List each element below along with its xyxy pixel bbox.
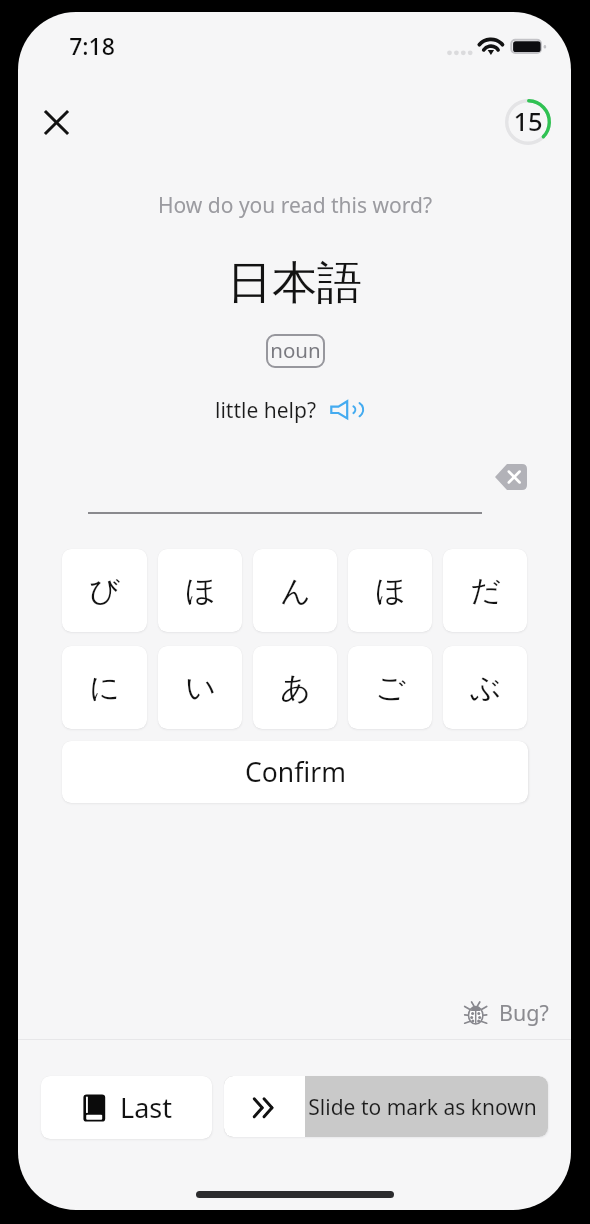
button[interactable]: ぶ xyxy=(443,646,527,729)
button[interactable]: little help? xyxy=(215,390,363,430)
button[interactable]: あ xyxy=(253,646,337,729)
staticText: だ xyxy=(470,572,501,610)
button[interactable]: Confirm xyxy=(62,741,528,803)
staticText: 7:18 xyxy=(69,30,115,61)
button[interactable]: Bug? xyxy=(464,992,549,1036)
staticText: ご xyxy=(375,669,406,707)
button[interactable]: い xyxy=(158,646,242,729)
staticText: ん xyxy=(280,572,311,610)
button[interactable]: ほ xyxy=(158,549,242,632)
button[interactable]: Last xyxy=(41,1076,212,1139)
staticText: ほ xyxy=(185,572,216,610)
button[interactable]: ほ xyxy=(348,549,432,632)
staticText: あ xyxy=(280,669,311,707)
button[interactable]: Close xyxy=(32,98,81,147)
staticText: び xyxy=(89,572,120,610)
button[interactable]: Slide to mark as known xyxy=(224,1076,548,1137)
staticText: noun xyxy=(270,336,321,364)
staticText: Confirm xyxy=(245,754,346,790)
button[interactable]: だ xyxy=(443,549,527,632)
button[interactable]: ん xyxy=(253,549,337,632)
staticText: little help? xyxy=(215,396,316,425)
button[interactable]: Time remaining xyxy=(505,99,551,145)
staticText: Last xyxy=(120,1089,172,1126)
staticText: い xyxy=(185,669,216,707)
staticText: ぶ xyxy=(470,669,501,707)
staticText: に xyxy=(89,669,120,707)
staticText: 日本語 xyxy=(227,255,362,312)
staticText: ほ xyxy=(375,572,406,610)
button[interactable]: び xyxy=(62,549,147,632)
staticText: Bug? xyxy=(499,998,549,1027)
button[interactable]: Backspace xyxy=(489,458,533,496)
staticText: 15 xyxy=(513,104,543,139)
button[interactable]: ご xyxy=(348,646,432,729)
staticText: Slide to mark as known xyxy=(308,1093,537,1122)
button[interactable]: に xyxy=(62,646,147,729)
staticText: How do you read this word? xyxy=(158,191,432,220)
